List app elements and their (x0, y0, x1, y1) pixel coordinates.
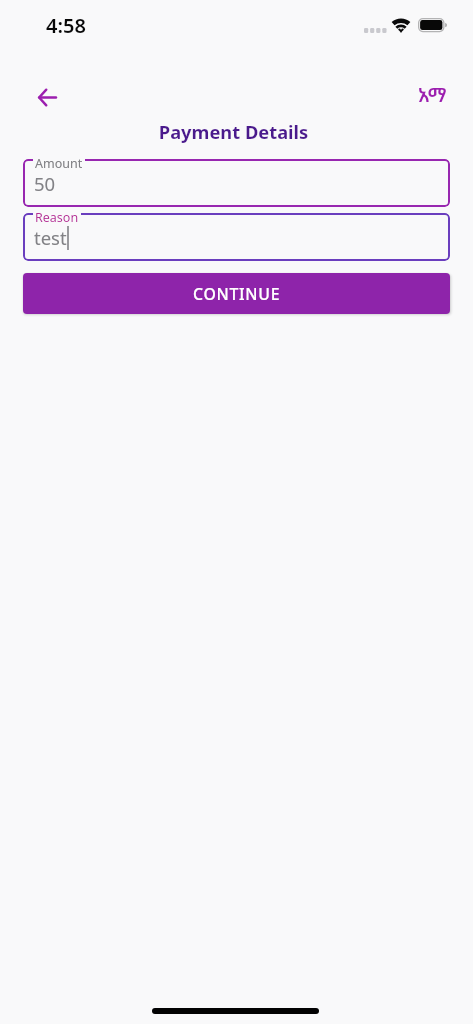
button[interactable]: Amount (23, 159, 450, 207)
staticText: አማ (418, 81, 447, 108)
staticText: 4:58 (46, 12, 86, 39)
staticText: 50 (34, 171, 56, 196)
other: Battery full (418, 18, 449, 33)
button[interactable]: Back (30, 81, 63, 114)
button[interactable]: CONTINUE (23, 273, 450, 314)
button[interactable]: Reason (23, 213, 450, 261)
other: Cellular signal (364, 28, 386, 33)
button[interactable]: አማ (418, 81, 447, 108)
other: Wi-Fi (390, 16, 414, 36)
staticText: test (34, 225, 67, 250)
staticText: Payment Details (0, 119, 467, 144)
staticText: CONTINUE (193, 283, 281, 305)
staticText: Reason (35, 209, 79, 226)
staticText: Amount (35, 155, 83, 172)
